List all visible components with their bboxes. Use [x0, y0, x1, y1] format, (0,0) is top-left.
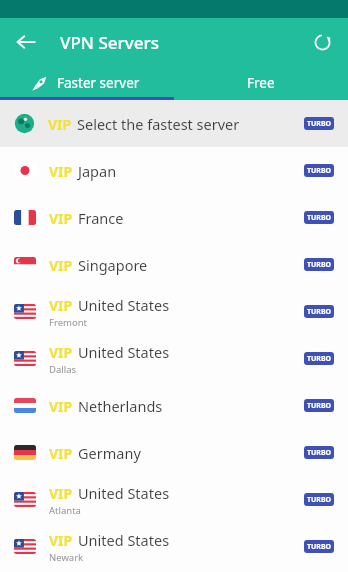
button[interactable]: VIP — [0, 523, 348, 570]
staticText: VIP — [49, 162, 73, 181]
button[interactable]: VIP — [0, 147, 348, 194]
staticText: VIP — [48, 115, 72, 134]
staticText: France — [78, 208, 124, 228]
button[interactable]: VIP — [0, 476, 348, 523]
staticText: VIP — [49, 444, 73, 463]
button[interactable]: Back — [8, 24, 44, 60]
staticText: VIP — [49, 484, 73, 503]
button[interactable]: VIP — [0, 429, 348, 476]
button[interactable]: VIP — [0, 241, 348, 288]
staticText: Faster server — [57, 74, 140, 92]
staticText: VIP — [49, 209, 73, 228]
button[interactable]: VIP — [0, 288, 348, 335]
staticText: TURBO — [307, 119, 332, 129]
staticText: Dallas — [49, 363, 77, 376]
button[interactable]: Faster server — [0, 66, 174, 100]
staticText: TURBO — [307, 354, 332, 364]
button[interactable]: VIP — [0, 100, 348, 147]
staticText: Atlanta — [49, 504, 81, 517]
staticText: Fremont — [49, 316, 87, 329]
staticText: VIP — [49, 531, 73, 550]
staticText: VIP — [49, 256, 73, 275]
staticText: Netherlands — [78, 396, 163, 416]
staticText: TURBO — [307, 260, 332, 270]
staticText: TURBO — [307, 166, 332, 176]
staticText: Japan — [78, 161, 117, 181]
staticText: TURBO — [307, 401, 332, 411]
staticText: Select the fastest server — [77, 114, 240, 134]
staticText: VIP — [49, 343, 73, 362]
button[interactable]: VIP — [0, 194, 348, 241]
button[interactable]: VIP — [0, 382, 348, 429]
button[interactable]: Refresh — [304, 24, 340, 60]
staticText: VIP — [49, 397, 73, 416]
staticText: TURBO — [307, 542, 332, 552]
staticText: VIP — [49, 296, 73, 315]
staticText: TURBO — [307, 495, 332, 505]
button[interactable]: VIP — [0, 335, 348, 382]
staticText: United States — [78, 342, 170, 362]
staticText: United States — [78, 530, 170, 550]
staticText: Germany — [78, 443, 141, 463]
staticText: TURBO — [307, 448, 332, 458]
staticText: TURBO — [307, 213, 332, 223]
button[interactable]: Free — [174, 66, 348, 100]
staticText: Singapore — [78, 255, 148, 275]
staticText: Newark — [49, 551, 84, 564]
staticText: United States — [78, 295, 170, 315]
staticText: Free — [247, 74, 275, 92]
staticText: United States — [78, 483, 170, 503]
staticText: VPN Servers — [60, 31, 159, 54]
staticText: TURBO — [307, 307, 332, 317]
